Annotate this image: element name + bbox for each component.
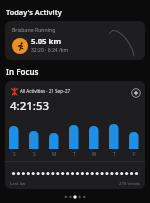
staticText: Today's Activity <box>6 7 62 17</box>
staticText: All Activities · 21 Sep–27 <box>20 88 71 94</box>
staticText: S <box>13 151 16 157</box>
staticText: Last 4w <box>10 180 26 186</box>
staticText: 4:21:53 <box>10 98 50 114</box>
staticText: 278 streak <box>119 180 140 186</box>
staticText: In Focus <box>6 66 39 77</box>
staticText: F <box>133 151 136 157</box>
staticText: T <box>113 151 116 157</box>
staticText: 32:20 · 6:24 /km <box>31 47 69 54</box>
staticText: 5.05 km <box>31 36 62 47</box>
button[interactable]: Add activity <box>130 87 142 99</box>
staticText: W <box>92 151 97 157</box>
staticText: M <box>52 151 57 157</box>
staticText: S <box>33 151 36 157</box>
button[interactable]: Brisbane Running <box>5 21 145 60</box>
staticText: T <box>73 151 76 157</box>
staticText: Brisbane Running <box>12 26 56 33</box>
